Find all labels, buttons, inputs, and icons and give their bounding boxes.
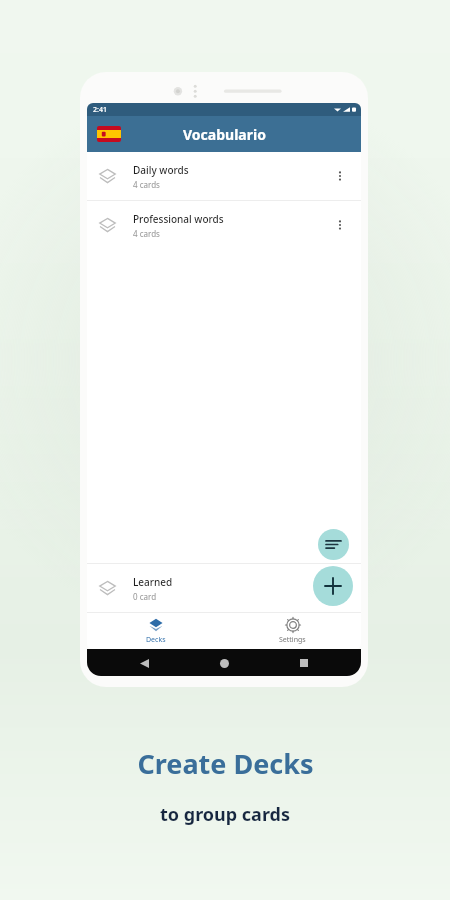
button[interactable]: Settings <box>224 613 361 649</box>
button[interactable]: Daily words <box>87 152 361 200</box>
staticText: Daily words <box>133 163 189 177</box>
staticText: Professional words <box>133 212 224 226</box>
staticText: to group cards <box>160 802 290 827</box>
button[interactable]: Learned <box>87 564 361 612</box>
staticText: 2:41 <box>93 105 107 115</box>
staticText: 4 cards <box>133 228 160 239</box>
staticText: Decks <box>146 635 166 645</box>
staticText: Learned <box>133 575 173 589</box>
staticText: 4 cards <box>133 179 160 190</box>
button[interactable]: Professional words <box>87 201 361 249</box>
button[interactable]: More options for Professional words <box>327 212 353 238</box>
button[interactable]: More options for Daily words <box>327 163 353 189</box>
staticText: Create Decks <box>137 745 314 782</box>
staticText: Settings <box>279 635 306 645</box>
staticText: Vocabulario <box>183 125 266 144</box>
button[interactable]: Back <box>135 654 153 672</box>
button[interactable]: Add deck <box>313 566 353 606</box>
button[interactable]: Recent apps <box>295 654 313 672</box>
button[interactable]: Language: Spanish <box>97 126 121 142</box>
button[interactable]: Sort decks <box>318 529 349 560</box>
staticText: 0 card <box>133 591 157 602</box>
button[interactable]: Decks <box>87 613 224 649</box>
button[interactable]: Home <box>215 654 233 672</box>
